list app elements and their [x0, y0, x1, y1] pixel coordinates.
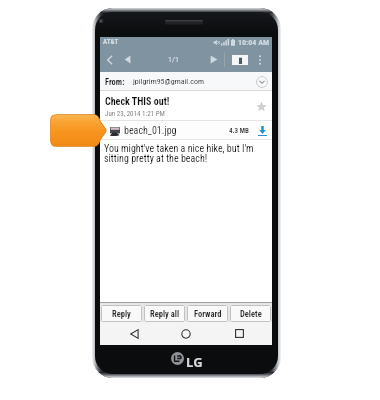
staticText: LG: [186, 353, 204, 371]
button[interactable]: Home: [167, 322, 205, 345]
button[interactable]: Move to folder: [228, 47, 251, 72]
staticText: Delete: [240, 309, 262, 319]
button[interactable]: Reply all: [144, 305, 185, 322]
staticText: jpilgrim95@gmail.com: [133, 77, 205, 86]
staticText: You might've taken a nice hike, but I'm …: [104, 143, 258, 164]
staticText: AT&T: [103, 38, 119, 46]
button[interactable]: Reply: [101, 305, 142, 322]
staticText: 10:04 AM: [238, 38, 270, 47]
button[interactable]: Previous message: [117, 47, 137, 72]
button[interactable]: Download attachment: [256, 125, 268, 137]
staticText: Forward: [194, 309, 222, 319]
button[interactable]: More options: [252, 47, 268, 72]
staticText: 1/1: [168, 55, 179, 64]
button[interactable]: Delete: [230, 305, 271, 322]
button[interactable]: Back: [115, 322, 153, 345]
staticText: beach_01.jpg: [124, 125, 177, 137]
button[interactable]: Next message: [204, 47, 224, 72]
button[interactable]: Recent apps: [220, 322, 258, 345]
staticText: From:: [105, 77, 125, 87]
button[interactable]: From:: [100, 72, 272, 91]
staticText: Check THIS out!: [105, 96, 170, 108]
staticText: Jun 23, 2014 1:21 PM: [105, 110, 165, 118]
staticText: Reply: [112, 309, 131, 319]
button[interactable]: beach_01.jpg: [100, 121, 272, 140]
staticText: Reply all: [150, 309, 180, 319]
button[interactable]: Back: [100, 47, 119, 72]
button[interactable]: Star: [254, 99, 268, 113]
button[interactable]: Expand details: [256, 76, 268, 88]
staticText: 4.3 MB: [229, 127, 249, 135]
button[interactable]: Forward: [187, 305, 228, 322]
